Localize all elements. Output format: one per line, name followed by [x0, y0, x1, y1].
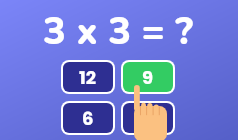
staticText: 12	[79, 65, 97, 90]
staticText: 9	[142, 65, 154, 90]
staticText: 18	[139, 106, 158, 131]
button[interactable]: 9	[123, 62, 173, 92]
button[interactable]: 12	[63, 62, 113, 92]
staticText: 3 x 3 = ?	[43, 6, 193, 58]
other: Tap answer	[134, 85, 167, 140]
button[interactable]: 18	[123, 103, 173, 133]
button[interactable]: 6	[63, 103, 113, 133]
staticText: 6	[82, 106, 94, 131]
